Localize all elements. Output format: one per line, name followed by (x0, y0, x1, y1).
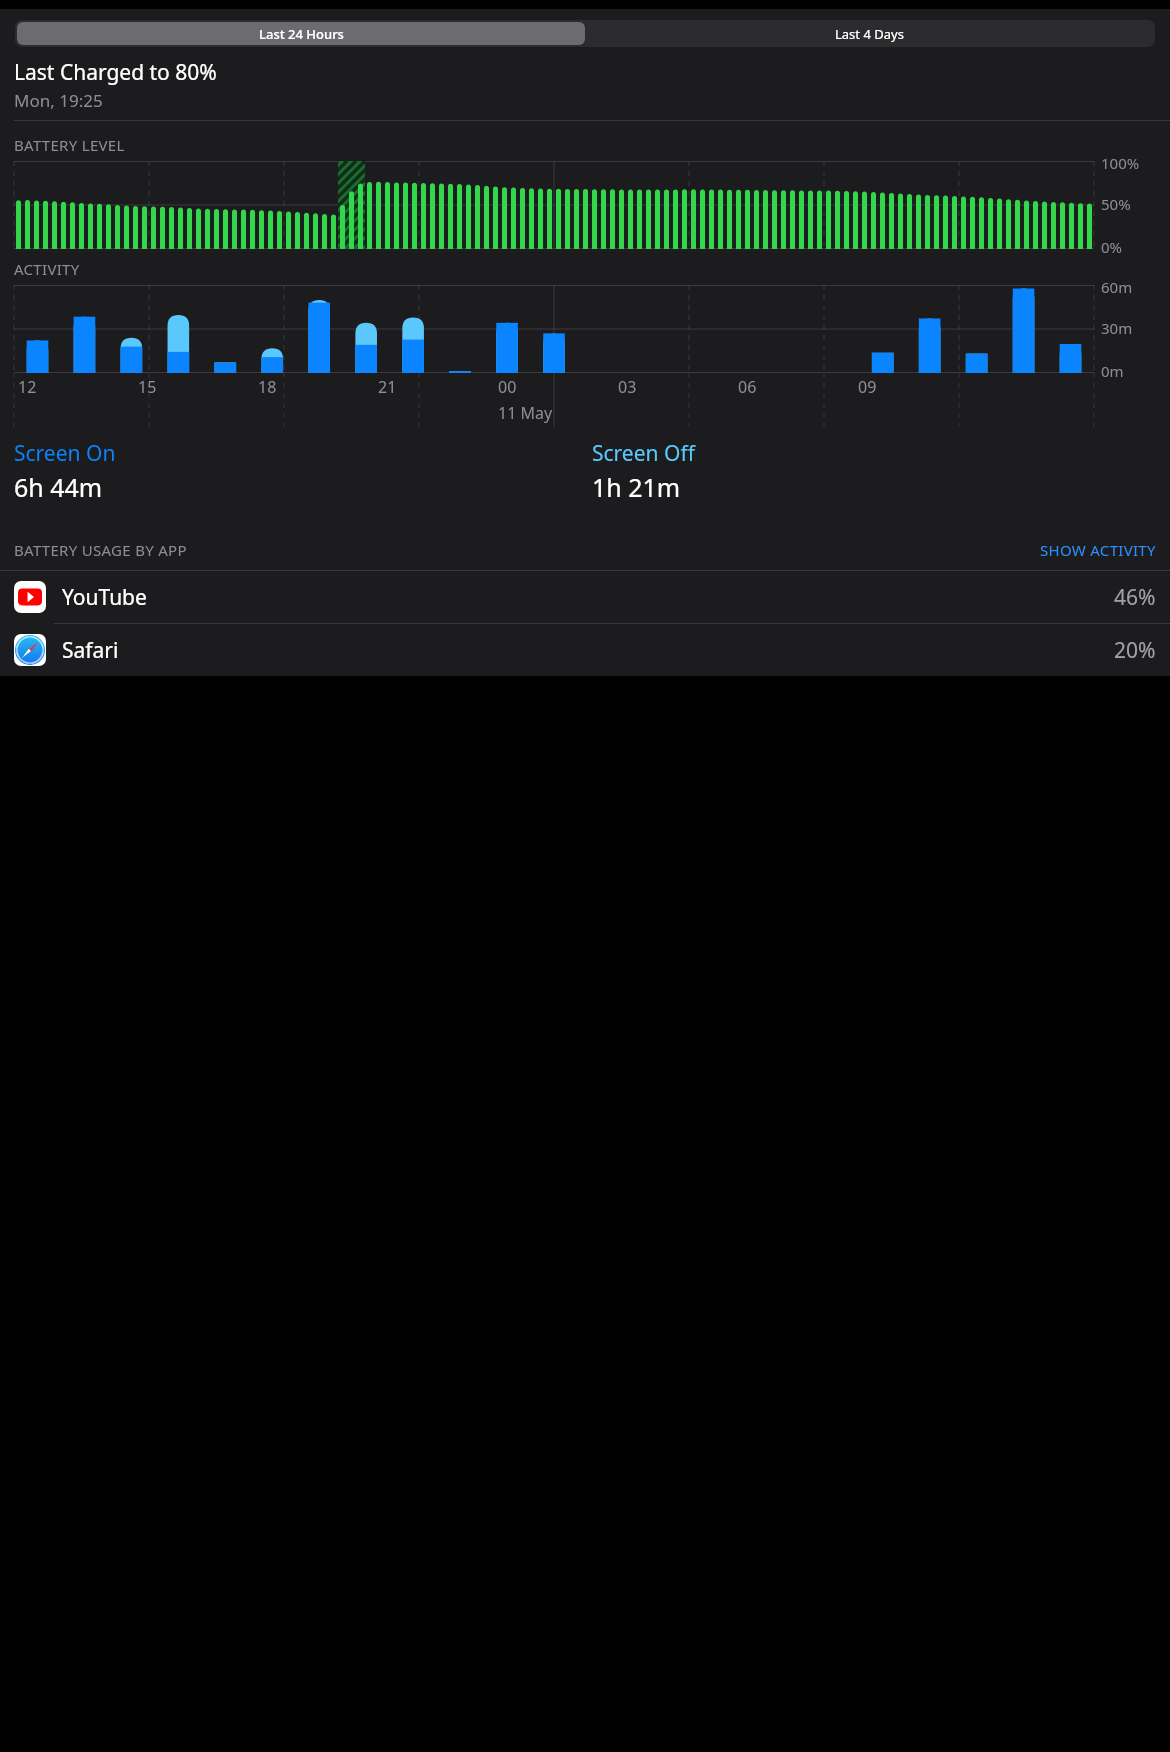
staticText: Safari (62, 636, 119, 665)
staticText: 30m (1101, 318, 1133, 338)
staticText: BATTERY USAGE BY APP (14, 540, 187, 560)
staticText: Last 4 Days (835, 25, 904, 43)
button[interactable]: Safari (0, 624, 1170, 676)
staticText: 60m (1101, 277, 1133, 297)
staticText: BATTERY LEVEL (14, 135, 125, 155)
staticText: 00 (498, 376, 517, 398)
staticText: 50% (1101, 194, 1131, 214)
button[interactable]: YouTube (0, 571, 1170, 623)
button[interactable]: Last 24 Hours (17, 22, 585, 45)
button[interactable]: Last 4 Days (585, 22, 1153, 45)
staticText: 21 (378, 376, 397, 398)
staticText: Mon, 19:25 (14, 89, 103, 112)
staticText: Last 24 Hours (259, 25, 344, 43)
staticText: 6h 44m (14, 470, 103, 504)
staticText: 18 (258, 376, 277, 398)
staticText: 06 (738, 376, 757, 398)
staticText: 100% (1101, 153, 1140, 173)
staticText: SHOW ACTIVITY (1040, 540, 1156, 560)
staticText: 03 (618, 376, 637, 398)
staticText: 0% (1101, 237, 1123, 257)
staticText: 0m (1101, 361, 1124, 381)
staticText: ACTIVITY (14, 259, 80, 279)
staticText: YouTube (62, 583, 147, 612)
staticText: Screen Off (592, 439, 695, 468)
staticText: Screen On (14, 439, 116, 468)
staticText: 09 (858, 376, 877, 398)
staticText: 12 (18, 376, 37, 398)
button[interactable]: SHOW ACTIVITY (1040, 540, 1156, 560)
staticText: 11 May (498, 402, 553, 424)
staticText: 46% (1114, 583, 1156, 612)
staticText: 15 (138, 376, 157, 398)
staticText: Last Charged to 80% (14, 58, 217, 87)
staticText: 20% (1114, 636, 1156, 665)
staticText: 1h 21m (592, 470, 681, 504)
